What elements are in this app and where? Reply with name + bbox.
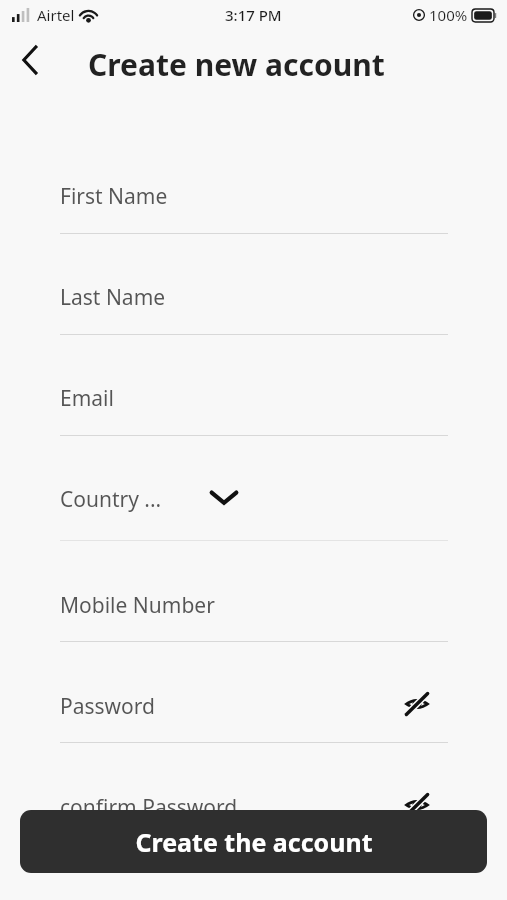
button[interactable]: Select country code	[204, 477, 244, 517]
button[interactable]: confirm Password	[60, 783, 448, 845]
button[interactable]: Password	[60, 682, 448, 744]
button[interactable]: Email	[60, 374, 448, 436]
staticText: 100%	[429, 5, 468, 25]
staticText: Country ...	[60, 485, 162, 514]
button[interactable]: Show password	[397, 684, 437, 724]
staticText: Create the account	[135, 825, 373, 859]
button[interactable]: Country ...	[60, 475, 448, 537]
staticText: Last Name	[60, 283, 166, 312]
staticText: Password	[60, 692, 155, 721]
staticText: Email	[60, 384, 114, 413]
button[interactable]: Mobile Number	[60, 581, 448, 643]
button[interactable]: Back	[8, 38, 52, 82]
staticText: First Name	[60, 182, 168, 211]
button[interactable]: Create the account	[20, 810, 487, 873]
staticText: Mobile Number	[60, 591, 215, 620]
staticText: confirm Password	[60, 793, 238, 822]
staticText: 3:17 PM	[225, 5, 282, 25]
button[interactable]: Show password	[397, 785, 437, 825]
staticText: Create new account	[88, 44, 385, 85]
button[interactable]: Last Name	[60, 273, 448, 335]
button[interactable]: First Name	[60, 172, 448, 234]
staticText: Airtel	[37, 5, 75, 25]
